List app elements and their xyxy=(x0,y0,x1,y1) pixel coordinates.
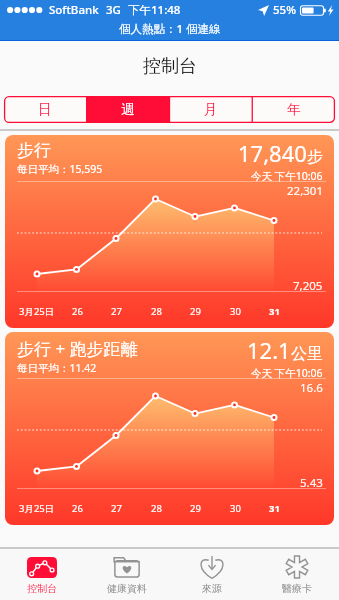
staticText: 12.1 xyxy=(247,335,291,365)
staticText: 今天 下午10:06 xyxy=(251,366,323,380)
staticText: 30 xyxy=(230,502,241,515)
staticText: 公里 xyxy=(291,344,323,364)
button[interactable]: Health Data xyxy=(84,549,169,600)
button[interactable]: 日 xyxy=(4,96,86,123)
staticText: 健康資料 xyxy=(107,582,147,595)
button[interactable]: 週 xyxy=(86,96,169,123)
button[interactable]: Medical ID xyxy=(254,549,339,600)
staticText: 月 xyxy=(204,101,218,118)
button[interactable]: Sources xyxy=(169,549,254,600)
staticText: 下午11:48 xyxy=(128,2,181,18)
staticText: 步 xyxy=(307,147,323,167)
staticText: 步行 + 跑步距離 xyxy=(17,337,138,360)
staticText: 7,205 xyxy=(293,278,323,294)
button[interactable]: Dashboard xyxy=(0,549,84,600)
staticText: 控制台 xyxy=(143,55,197,78)
staticText: SoftBank xyxy=(49,2,99,18)
staticText: 26 xyxy=(72,305,83,318)
staticText: 31 xyxy=(269,305,280,318)
staticText: 控制台 xyxy=(27,582,57,595)
staticText: 55% xyxy=(273,2,296,18)
other: Health Data xyxy=(113,556,141,578)
other: Medical ID xyxy=(284,555,310,579)
staticText: 27 xyxy=(111,305,122,318)
staticText: 5.43 xyxy=(300,475,323,491)
staticText: 29 xyxy=(190,502,201,515)
staticText: 年 xyxy=(287,101,301,118)
button[interactable]: 年 xyxy=(252,96,335,123)
staticText: 3月25日 xyxy=(19,305,55,318)
other: Dashboard xyxy=(27,557,57,578)
staticText: 22,301 xyxy=(287,183,323,199)
staticText: 30 xyxy=(230,305,241,318)
staticText: 步行 xyxy=(17,140,51,161)
staticText: 來源 xyxy=(202,582,222,595)
staticText: 3G xyxy=(106,2,121,18)
staticText: 每日平均：11.42 xyxy=(17,361,97,375)
staticText: 3月25日 xyxy=(19,502,55,515)
button[interactable]: 步行 xyxy=(5,135,334,328)
staticText: 個人熱點：1 個連線 xyxy=(119,21,221,37)
staticText: 週 xyxy=(121,101,135,118)
staticText: 每日平均：15,595 xyxy=(17,162,103,176)
staticText: 26 xyxy=(72,502,83,515)
staticText: 28 xyxy=(151,502,162,515)
staticText: 28 xyxy=(151,305,162,318)
button[interactable]: 月 xyxy=(169,96,252,123)
button[interactable]: 步行 + 跑步距離 xyxy=(5,332,334,525)
staticText: 29 xyxy=(190,305,201,318)
staticText: 日 xyxy=(38,101,52,118)
staticText: 今天 下午10:06 xyxy=(251,169,323,183)
other: Sources xyxy=(197,555,227,579)
staticText: 16.6 xyxy=(300,380,323,396)
staticText: 17,840 xyxy=(238,138,307,168)
staticText: 31 xyxy=(269,502,280,515)
staticText: 醫療卡 xyxy=(282,582,312,595)
staticText: 27 xyxy=(111,502,122,515)
